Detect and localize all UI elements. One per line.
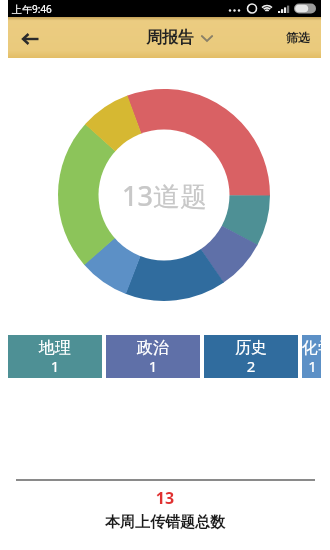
staticText: 化学: [302, 338, 321, 358]
staticText: 上午9:46: [12, 2, 52, 16]
button[interactable]: 周报告: [146, 28, 213, 48]
button[interactable]: 化学: [302, 335, 321, 378]
staticText: 2: [204, 356, 298, 376]
staticText: 1: [106, 356, 200, 376]
staticText: 政治: [106, 338, 200, 358]
button[interactable]: 地理: [8, 335, 102, 378]
button[interactable]: 历史: [204, 335, 298, 378]
staticText: 本周上传错题总数: [0, 513, 330, 532]
staticText: 历史: [204, 338, 298, 358]
staticText: 13道题: [122, 177, 207, 214]
button[interactable]: 政治: [106, 335, 200, 378]
staticText: 13: [0, 487, 330, 509]
staticText: 地理: [8, 338, 102, 358]
staticText: 周报告: [146, 28, 194, 48]
button[interactable]: [8, 17, 52, 58]
staticText: 1: [8, 356, 102, 376]
staticText: 筛选: [286, 30, 310, 45]
button[interactable]: 筛选: [275, 17, 321, 58]
staticText: 1: [302, 356, 321, 376]
